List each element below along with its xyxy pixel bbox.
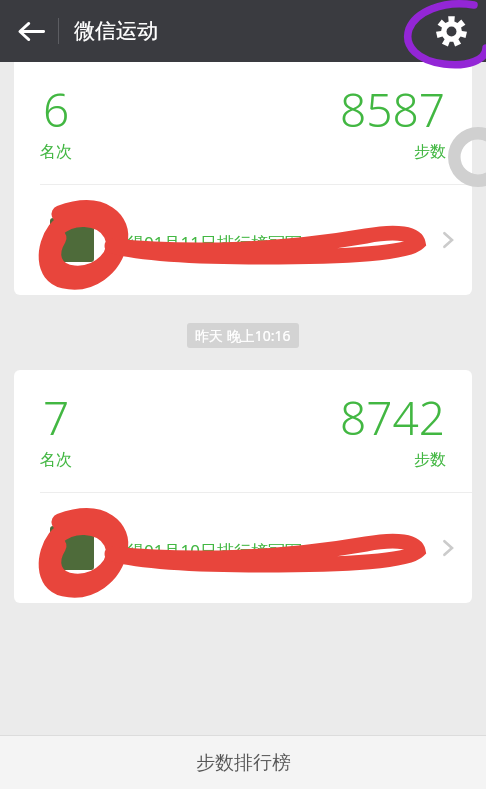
staticText: 8587 — [340, 78, 446, 141]
staticText: 名次 — [40, 450, 72, 470]
button[interactable]: 未得01月11日排行榜冠军 — [14, 185, 472, 295]
staticText: 步数排行榜 — [196, 751, 291, 775]
staticText: 7 — [43, 386, 70, 449]
staticText: 6 — [43, 78, 70, 141]
staticText: 微信运动 — [74, 18, 158, 44]
staticText: 步数 — [414, 142, 446, 162]
staticText: 未得01月10日排行榜冠军 — [110, 539, 302, 562]
staticText: 8742 — [340, 386, 446, 449]
button[interactable]: Settings — [424, 4, 478, 58]
button[interactable]: Back — [4, 4, 58, 58]
button[interactable]: 步数排行榜 — [0, 736, 486, 789]
staticText: 步数 — [414, 450, 446, 470]
staticText: 未得01月11日排行榜冠军 — [110, 231, 302, 254]
staticText: 名次 — [40, 142, 72, 162]
button[interactable]: 未得01月10日排行榜冠军 — [14, 493, 472, 603]
staticText: 昨天 晚上10:16 — [195, 326, 291, 345]
